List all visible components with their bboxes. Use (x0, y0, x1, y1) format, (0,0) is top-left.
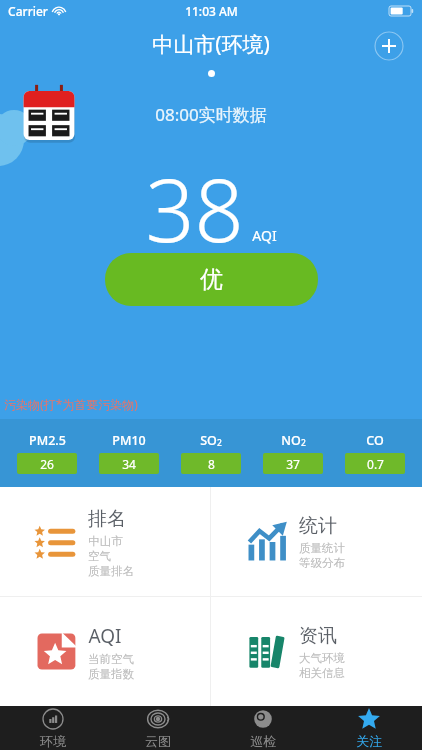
staticText: 质量统计 (299, 541, 345, 555)
staticText: 2 (217, 437, 222, 449)
button[interactable]: 排名 (0, 487, 210, 596)
staticText: 等级分布 (299, 556, 345, 570)
staticText: 资讯 (299, 624, 337, 648)
button[interactable]: 0.7 (345, 453, 405, 474)
staticText: CO (366, 432, 384, 449)
button[interactable]: 资讯 (211, 597, 422, 706)
staticText: 质量排名 (88, 564, 134, 578)
staticText: 相关信息 (299, 666, 345, 680)
staticText: 污染物(打*为首要污染物) (4, 396, 138, 412)
staticText: 8 (208, 456, 215, 472)
button[interactable]: 巡检 (210, 706, 316, 750)
staticText: AQI (88, 623, 122, 649)
staticText: 大气环境 (299, 651, 345, 665)
button[interactable]: 34 (99, 453, 159, 474)
staticText: NO (281, 432, 301, 449)
staticText: 环境 (40, 733, 66, 749)
staticText: 08:00实时数据 (155, 103, 267, 126)
staticText: 统计 (299, 514, 337, 538)
staticText: 中山市 (88, 534, 123, 548)
staticText: 优 (200, 265, 223, 294)
staticText: 0.7 (367, 456, 384, 472)
button[interactable]: 8 (181, 453, 241, 474)
staticText: 巡检 (250, 733, 276, 749)
staticText: PM2.5 (29, 432, 66, 449)
staticText: 空气 (88, 549, 111, 563)
button[interactable]: 26 (17, 453, 77, 474)
staticText: 关注 (356, 733, 382, 749)
button[interactable]: 云图 (105, 706, 210, 750)
staticText: 38 (145, 150, 244, 267)
staticText: 当前空气 (88, 652, 134, 666)
button[interactable]: 关注 (316, 706, 422, 750)
staticText: 34 (122, 456, 136, 472)
staticText: 中山市(环境) (152, 30, 270, 59)
staticText: 排名 (88, 507, 126, 531)
staticText: 37 (286, 456, 300, 472)
button[interactable]: 环境 (0, 706, 105, 750)
staticText: 2 (301, 437, 306, 449)
staticText: Carrier (8, 3, 48, 19)
staticText: SO (200, 432, 217, 449)
button[interactable]: 优 (105, 253, 318, 306)
button[interactable]: 统计 (211, 487, 422, 596)
staticText: AQI (252, 226, 277, 245)
staticText: 质量指数 (88, 667, 134, 681)
button[interactable]: AQI (0, 597, 210, 706)
button[interactable]: Add city (374, 31, 404, 61)
button[interactable]: Pollution calendar (18, 83, 80, 145)
staticText: 11:03 AM (185, 3, 238, 19)
staticText: 26 (40, 456, 54, 472)
button[interactable]: 37 (263, 453, 323, 474)
staticText: 云图 (145, 733, 171, 749)
staticText: PM10 (112, 432, 146, 449)
